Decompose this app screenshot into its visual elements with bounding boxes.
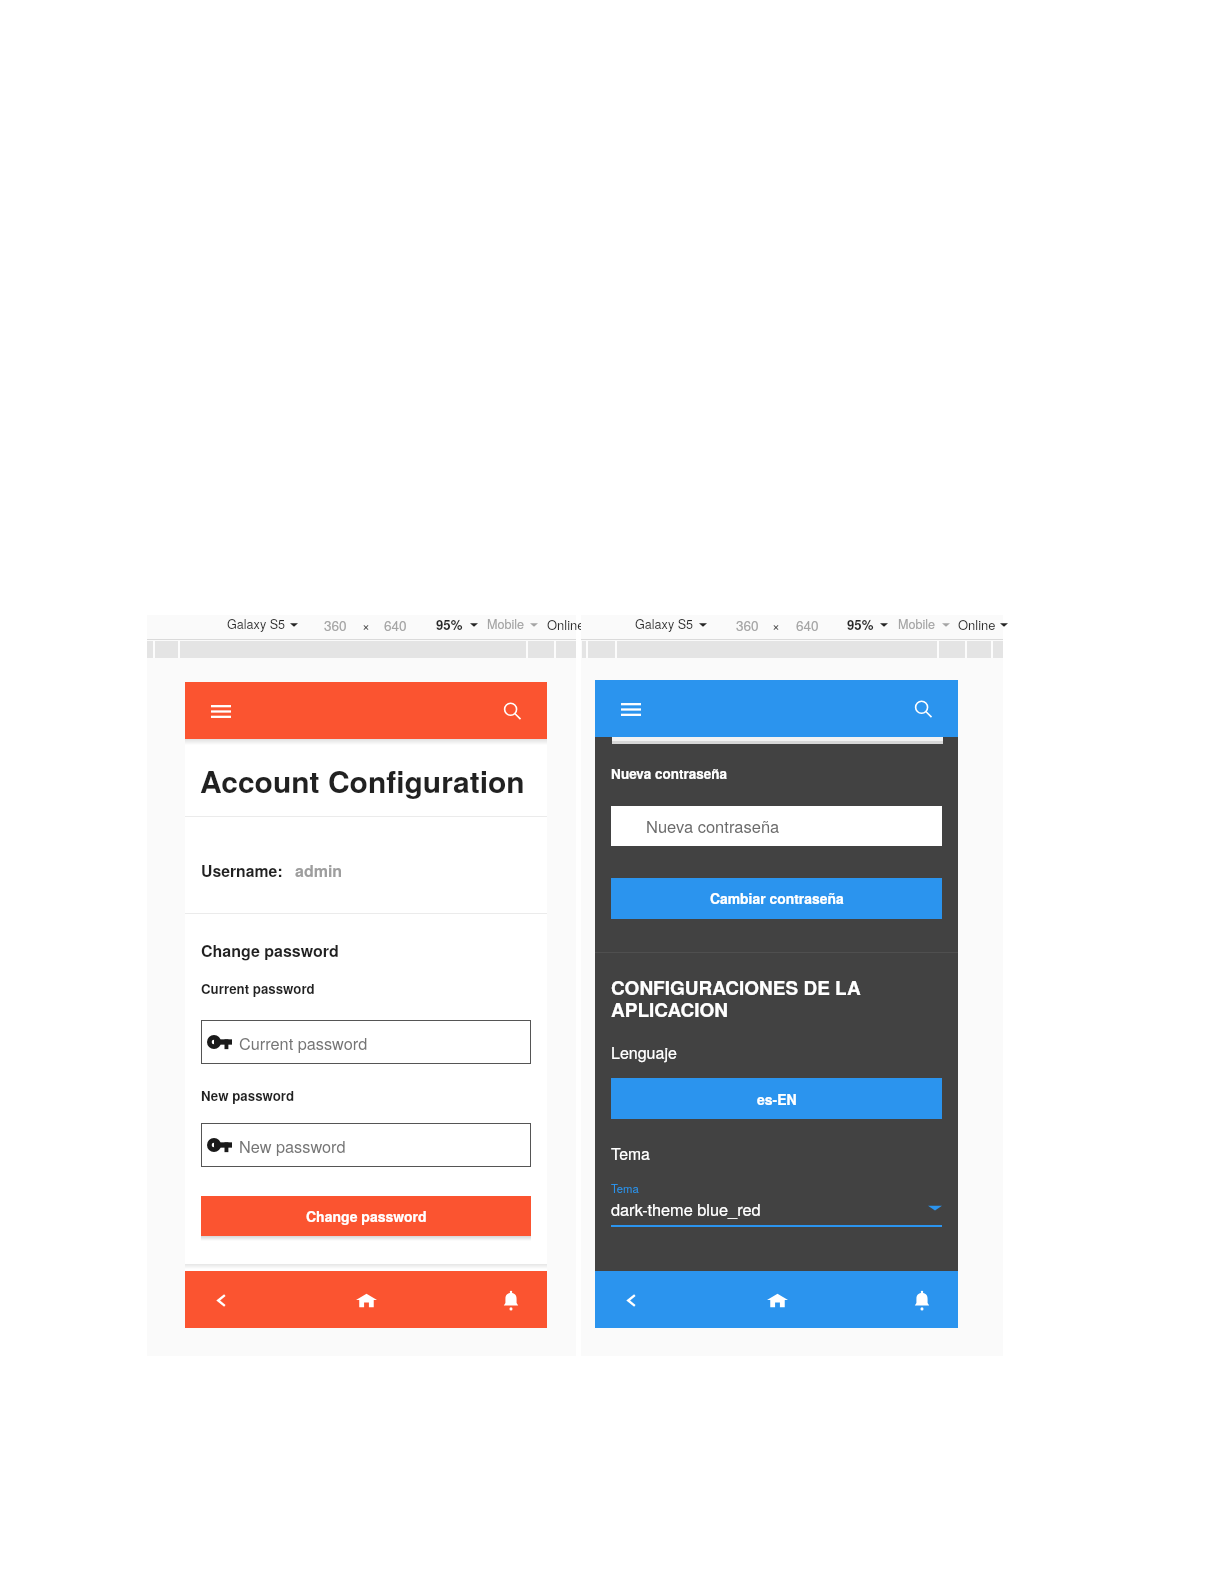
staticText: Change password xyxy=(306,1206,427,1226)
staticText: Change password xyxy=(201,939,339,962)
staticText: Nueva contraseña xyxy=(646,814,780,838)
button[interactable]: Menu xyxy=(617,695,645,723)
staticText: Galaxy S5 xyxy=(227,615,286,633)
staticText: 640 xyxy=(796,615,819,634)
button[interactable]: Back xyxy=(207,1286,235,1314)
button[interactable]: Nueva contraseña xyxy=(611,806,942,846)
staticText: 360 xyxy=(324,615,347,634)
button[interactable]: New password xyxy=(201,1123,531,1167)
staticText: Username: xyxy=(201,859,283,882)
staticText: 95% xyxy=(436,615,463,634)
button[interactable]: es-EN xyxy=(611,1078,942,1119)
button[interactable]: Current password xyxy=(201,1020,531,1064)
staticText: Mobile xyxy=(487,615,525,633)
button[interactable]: Home xyxy=(763,1286,791,1314)
staticText: Mobile xyxy=(898,615,936,633)
button[interactable]: Home xyxy=(352,1286,380,1314)
staticText: CONFIGURACIONES DE LA APLICACION xyxy=(611,974,861,1023)
staticText: Tema xyxy=(611,1180,639,1196)
staticText: es-EN xyxy=(757,1089,797,1109)
button[interactable]: Menu xyxy=(207,697,235,725)
staticText: Nueva contraseña xyxy=(611,764,728,783)
staticText: × xyxy=(772,615,780,634)
button[interactable]: Back xyxy=(617,1286,645,1314)
button[interactable]: Notifications xyxy=(908,1286,936,1314)
button[interactable]: Search xyxy=(909,695,937,723)
button[interactable]: Change password xyxy=(201,1196,531,1236)
staticText: Tema xyxy=(611,1142,650,1165)
staticText: Current password xyxy=(239,1031,368,1054)
staticText: Current password xyxy=(201,979,315,998)
staticText: Galaxy S5 xyxy=(635,615,694,633)
staticText: New password xyxy=(239,1134,346,1157)
staticText: dark-theme blue_red xyxy=(611,1197,761,1220)
staticText: New password xyxy=(201,1086,295,1105)
staticText: Cambiar contraseña xyxy=(710,888,844,908)
button[interactable]: Search xyxy=(498,697,526,725)
button[interactable]: Cambiar contraseña xyxy=(611,878,942,919)
staticText: 95% xyxy=(847,615,874,634)
staticText: 360 xyxy=(736,615,759,634)
staticText: Account Configuration xyxy=(200,759,525,802)
staticText: 640 xyxy=(384,615,407,634)
staticText: × xyxy=(362,615,370,634)
staticText: Online xyxy=(958,615,996,634)
button[interactable]: Notifications xyxy=(497,1286,525,1314)
button[interactable]: Tema xyxy=(611,1180,942,1203)
staticText: Lenguaje xyxy=(611,1041,677,1064)
staticText: admin xyxy=(295,859,343,882)
staticText: Online xyxy=(547,615,585,634)
